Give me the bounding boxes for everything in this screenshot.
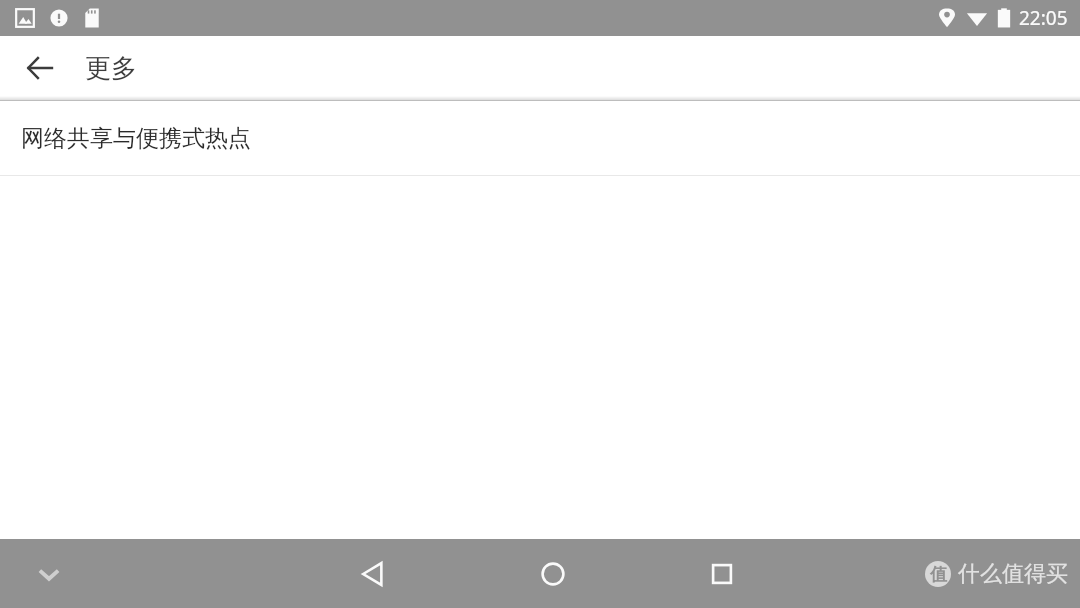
staticText: 什么值得买 <box>958 560 1068 588</box>
button[interactable]: 网络共享与便携式热点 <box>0 101 1080 175</box>
staticText: 更多 <box>85 52 137 85</box>
staticText: 网络共享与便携式热点 <box>21 124 251 153</box>
button[interactable]: Recent apps <box>698 550 746 598</box>
button[interactable]: Back <box>16 44 64 92</box>
button[interactable]: Back <box>348 550 396 598</box>
staticText: 22:05 <box>1019 5 1068 31</box>
button[interactable]: Hide keyboard <box>25 550 73 598</box>
staticText: 值 <box>930 564 947 585</box>
button[interactable]: Home <box>529 550 577 598</box>
